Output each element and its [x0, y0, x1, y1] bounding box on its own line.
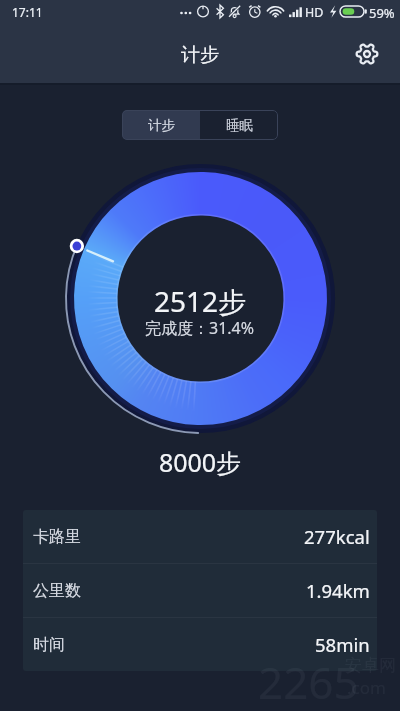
staticText: 1.94km: [306, 578, 370, 603]
staticText: 完成度：31.4%: [145, 317, 255, 339]
button[interactable]: 时间: [23, 618, 377, 671]
staticText: 安卓网: [345, 655, 396, 676]
staticText: 时间: [33, 635, 65, 655]
staticText: 公里数: [33, 581, 81, 601]
button[interactable]: 公里数: [23, 564, 377, 618]
button[interactable]: Settings: [343, 30, 390, 77]
staticText: 睡眠: [226, 117, 253, 134]
staticText: 58min: [315, 632, 370, 657]
button[interactable]: 睡眠: [200, 110, 278, 140]
staticText: 计步: [148, 117, 175, 134]
staticText: HD: [305, 4, 324, 21]
staticText: 2265: [258, 652, 359, 711]
button[interactable]: 计步: [122, 110, 200, 140]
staticText: 2512步: [154, 282, 247, 320]
staticText: 8000步: [0, 445, 400, 479]
staticText: 计步: [181, 43, 219, 67]
staticText: .com: [347, 676, 386, 699]
staticText: 卡路里: [33, 527, 81, 547]
staticText: 59%: [369, 4, 395, 22]
button[interactable]: 卡路里: [23, 510, 377, 564]
staticText: 17:11: [12, 4, 43, 20]
staticText: 277kcal: [304, 524, 370, 549]
